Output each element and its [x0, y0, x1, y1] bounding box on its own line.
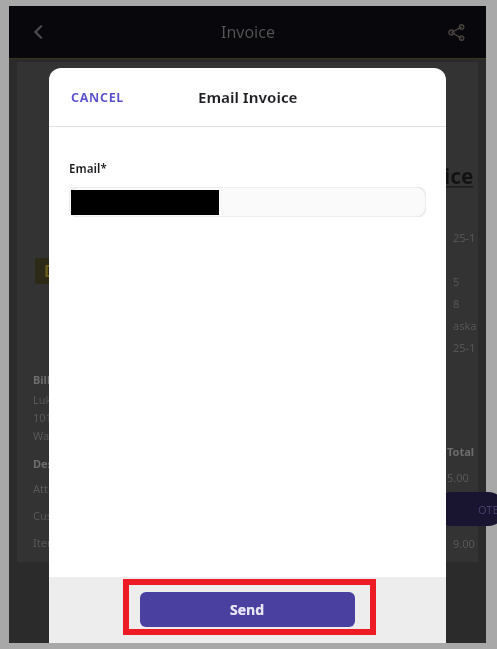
button[interactable]: CANCEL [59, 81, 137, 114]
staticText: Invoice [397, 162, 474, 191]
button[interactable]: Send [140, 592, 355, 627]
staticText: 8 [453, 296, 460, 311]
staticText: Email Invoice [198, 87, 298, 107]
staticText: 5 [453, 274, 460, 289]
staticText: Total [447, 444, 475, 459]
staticText: 5.00 [447, 470, 469, 485]
staticText: Send [230, 600, 265, 619]
staticText: CANCEL [71, 89, 125, 106]
button[interactable]: Back [21, 14, 57, 50]
staticText: Luke [33, 392, 58, 407]
staticText: D [44, 260, 56, 282]
staticText: Cust [33, 508, 56, 523]
staticText: 25-1 [453, 340, 476, 355]
staticText: aska [453, 318, 477, 333]
staticText: Email* [69, 161, 107, 177]
button[interactable] [69, 187, 426, 217]
staticText: 25-1 [453, 230, 476, 245]
staticText: Waco [33, 428, 62, 443]
staticText: Invoice [221, 21, 275, 43]
staticText: 9.00 [453, 536, 475, 551]
staticText: Attic [33, 481, 57, 496]
staticText: 1010 [33, 410, 59, 425]
staticText: OTE [478, 502, 497, 517]
staticText: Desc [33, 456, 59, 471]
staticText: Billin [33, 372, 61, 387]
staticText: Item [33, 535, 58, 550]
button[interactable]: Share [438, 14, 474, 50]
